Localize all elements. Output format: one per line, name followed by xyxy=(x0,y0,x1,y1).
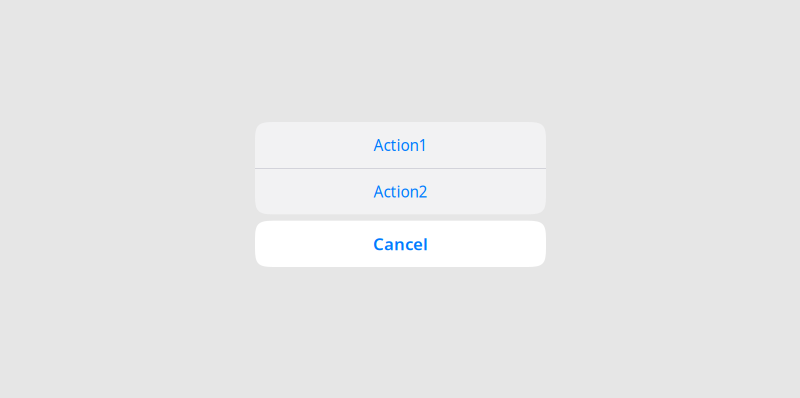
button[interactable]: Cancel xyxy=(255,221,546,267)
button[interactable]: Action2 xyxy=(255,169,546,214)
button[interactable]: Action1 xyxy=(255,122,546,168)
staticText: Cancel xyxy=(373,232,428,255)
staticText: Action2 xyxy=(373,181,427,202)
staticText: Action1 xyxy=(373,135,427,155)
